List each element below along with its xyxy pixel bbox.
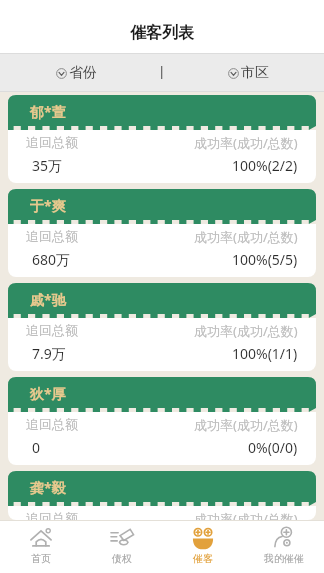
staticText: 100%(2/2) [232,156,298,175]
staticText: 戚*驰 [30,290,66,309]
button[interactable]: 省份 [0,53,152,92]
button[interactable]: 催客 [162,526,243,573]
button[interactable]: 我的催催 [243,526,324,573]
staticText: 龚*毅 [30,478,66,497]
staticText: 成功率(成功/总数) [194,416,298,434]
button[interactable]: 龚*毅 [8,471,316,520]
staticText: 省份 [69,64,97,82]
staticText: 100%(1/1) [232,344,298,363]
staticText: 债权 [112,552,132,565]
staticText: 成功率(成功/总数) [194,322,298,340]
staticText: 成功率(成功/总数) [194,134,298,152]
button[interactable]: 债权 [81,526,162,573]
staticText: 追回总额 [26,228,78,244]
staticText: 市区 [241,64,269,82]
staticText: 680万 [32,250,71,269]
button[interactable]: 郁*萱 [8,95,316,183]
staticText: 追回总额 [26,322,78,338]
staticText: 首页 [31,552,51,565]
staticText: 7.9万 [32,344,66,363]
staticText: 我的催催 [264,552,304,565]
staticText: 0%(0/0) [248,438,298,457]
staticText: 成功率(成功/总数) [194,228,298,246]
staticText: 于*爽 [30,196,66,215]
button[interactable]: 于*爽 [8,189,316,277]
staticText: 追回总额 [26,134,78,150]
button[interactable]: 首页 [0,526,81,573]
staticText: 成功率(成功/总数) [194,510,298,520]
staticText: 催客列表 [130,23,194,43]
button[interactable]: 戚*驰 [8,283,316,371]
staticText: 催客 [193,552,213,565]
button[interactable]: 市区 [172,53,324,92]
staticText: 0 [32,438,41,457]
staticText: 35万 [32,156,63,175]
button[interactable]: 狄*厚 [8,377,316,465]
staticText: 追回总额 [26,510,78,520]
staticText: 郁*萱 [30,102,66,121]
staticText: 追回总额 [26,416,78,432]
staticText: 100%(5/5) [232,250,298,269]
staticText: 狄*厚 [30,384,66,403]
